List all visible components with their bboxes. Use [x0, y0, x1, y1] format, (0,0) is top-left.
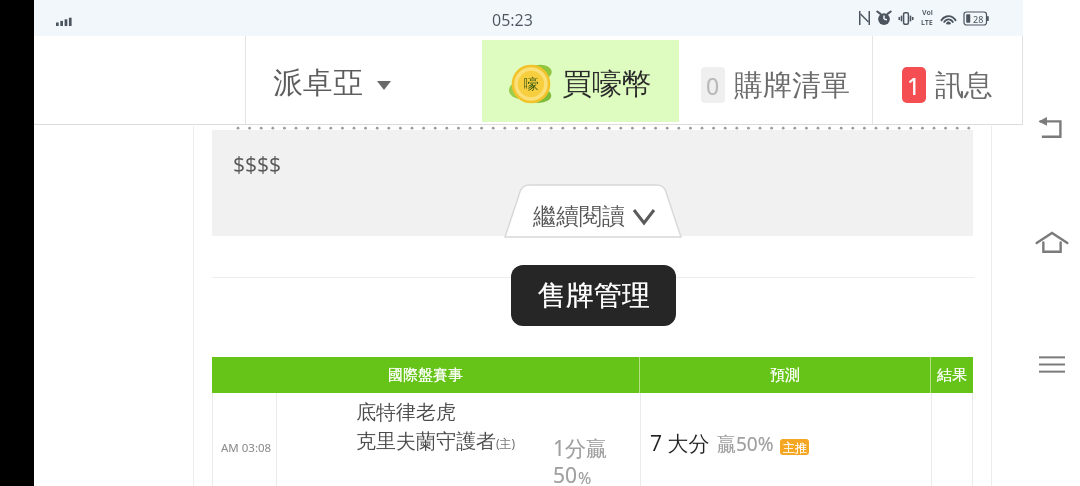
staticText: 克里夫蘭守護者: [356, 429, 496, 454]
staticText: $$$$: [233, 150, 282, 179]
staticText: 1: [907, 70, 921, 101]
staticText: AM 03:08: [221, 440, 272, 456]
staticText: 50: [553, 461, 578, 486]
button[interactable]: 派卓亞: [246, 36, 482, 125]
button[interactable]: 1: [873, 36, 1022, 125]
staticText: 訊息: [935, 67, 993, 104]
staticText: 1分贏: [553, 434, 608, 463]
staticText: 05:23: [492, 9, 533, 31]
button[interactable]: Home: [1031, 222, 1073, 264]
staticText: 7 大分: [650, 429, 710, 458]
staticText: 買嚎幣: [562, 65, 652, 103]
staticText: 結果: [937, 366, 967, 385]
button[interactable]: Back: [1031, 107, 1073, 149]
staticText: 預測: [770, 366, 800, 385]
staticText: LTE: [921, 18, 933, 28]
staticText: (主): [496, 435, 516, 451]
button[interactable]: Recent apps: [1031, 343, 1073, 385]
button[interactable]: 0: [679, 36, 872, 125]
staticText: 購牌清單: [734, 67, 850, 104]
staticText: 售牌管理: [538, 278, 650, 313]
staticText: 繼續閱讀: [533, 202, 625, 231]
staticText: 0: [706, 70, 720, 101]
staticText: 國際盤賽事: [388, 366, 463, 385]
staticText: 派卓亞: [273, 64, 363, 102]
button[interactable]: 繼續閱讀: [505, 185, 681, 237]
staticText: 嚎: [524, 75, 539, 94]
staticText: 28: [973, 13, 984, 25]
staticText: 底特律老虎: [356, 400, 456, 425]
button[interactable]: 嚎: [482, 36, 679, 125]
button[interactable]: AM 03:08: [212, 393, 973, 486]
staticText: 主推: [783, 440, 807, 455]
staticText: %: [578, 467, 592, 486]
staticText: 贏50%: [717, 431, 774, 457]
staticText: Vol: [922, 8, 933, 18]
